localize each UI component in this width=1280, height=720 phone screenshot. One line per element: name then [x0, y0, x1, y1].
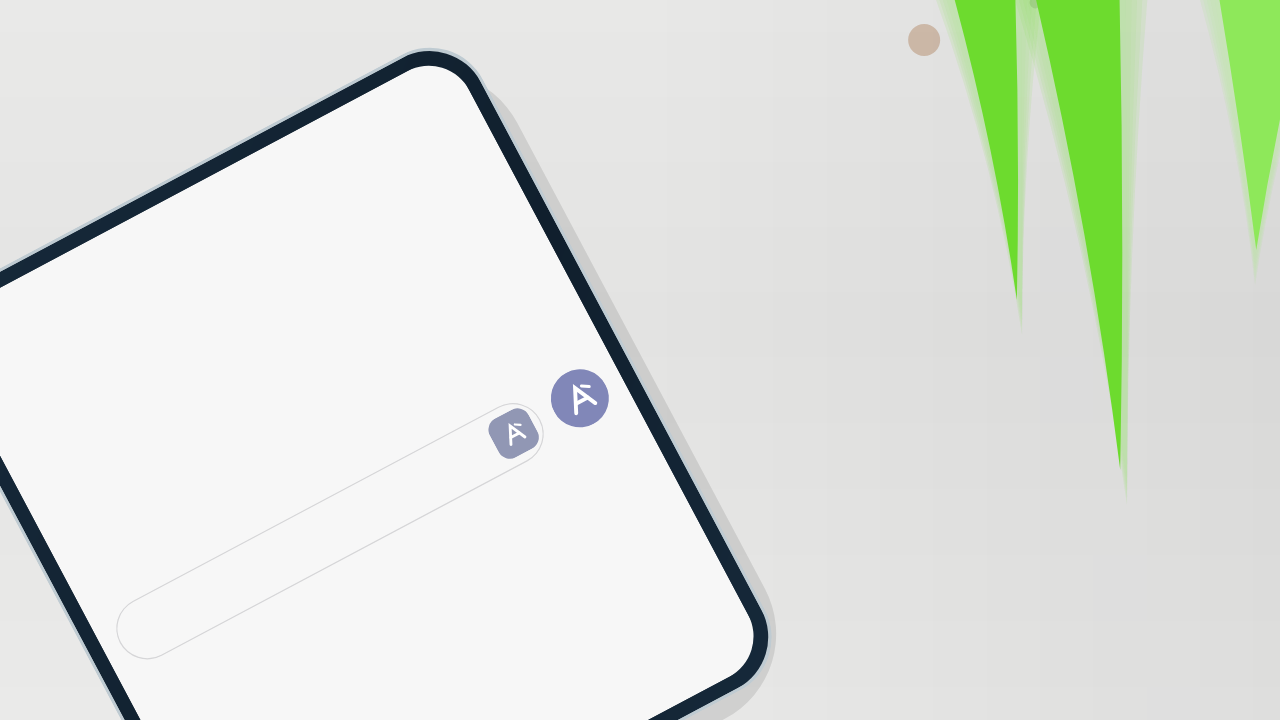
button[interactable]: Message input field: [105, 392, 555, 670]
button[interactable]: Apps: [541, 359, 619, 437]
button[interactable]: Attach media: [484, 404, 543, 463]
